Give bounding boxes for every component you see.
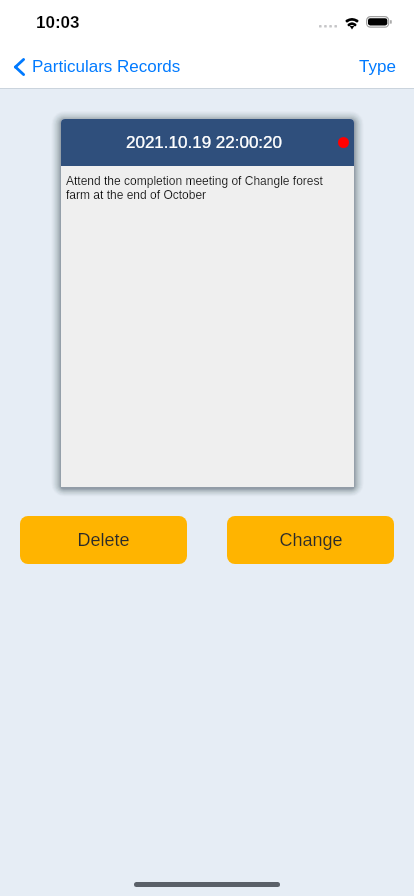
- staticText: Delete: [77, 530, 130, 550]
- other: Wi-Fi: [344, 16, 360, 30]
- staticText: Type: [359, 57, 396, 76]
- other: Back: [14, 58, 25, 76]
- staticText: 2021.10.19 22:00:20: [126, 133, 282, 152]
- staticText: Particulars Records: [32, 57, 181, 76]
- button[interactable]: 2021.10.19 22:00:20: [61, 119, 354, 487]
- button[interactable]: Change: [227, 516, 394, 564]
- staticText: Attend the completion meeting of Changle…: [66, 174, 348, 202]
- staticText: 10:03: [36, 13, 80, 32]
- button[interactable]: Delete: [20, 516, 187, 564]
- other: Battery: [366, 16, 392, 28]
- button[interactable]: Type: [341, 49, 414, 84]
- button[interactable]: Back: [0, 51, 189, 82]
- staticText: Change: [279, 530, 343, 550]
